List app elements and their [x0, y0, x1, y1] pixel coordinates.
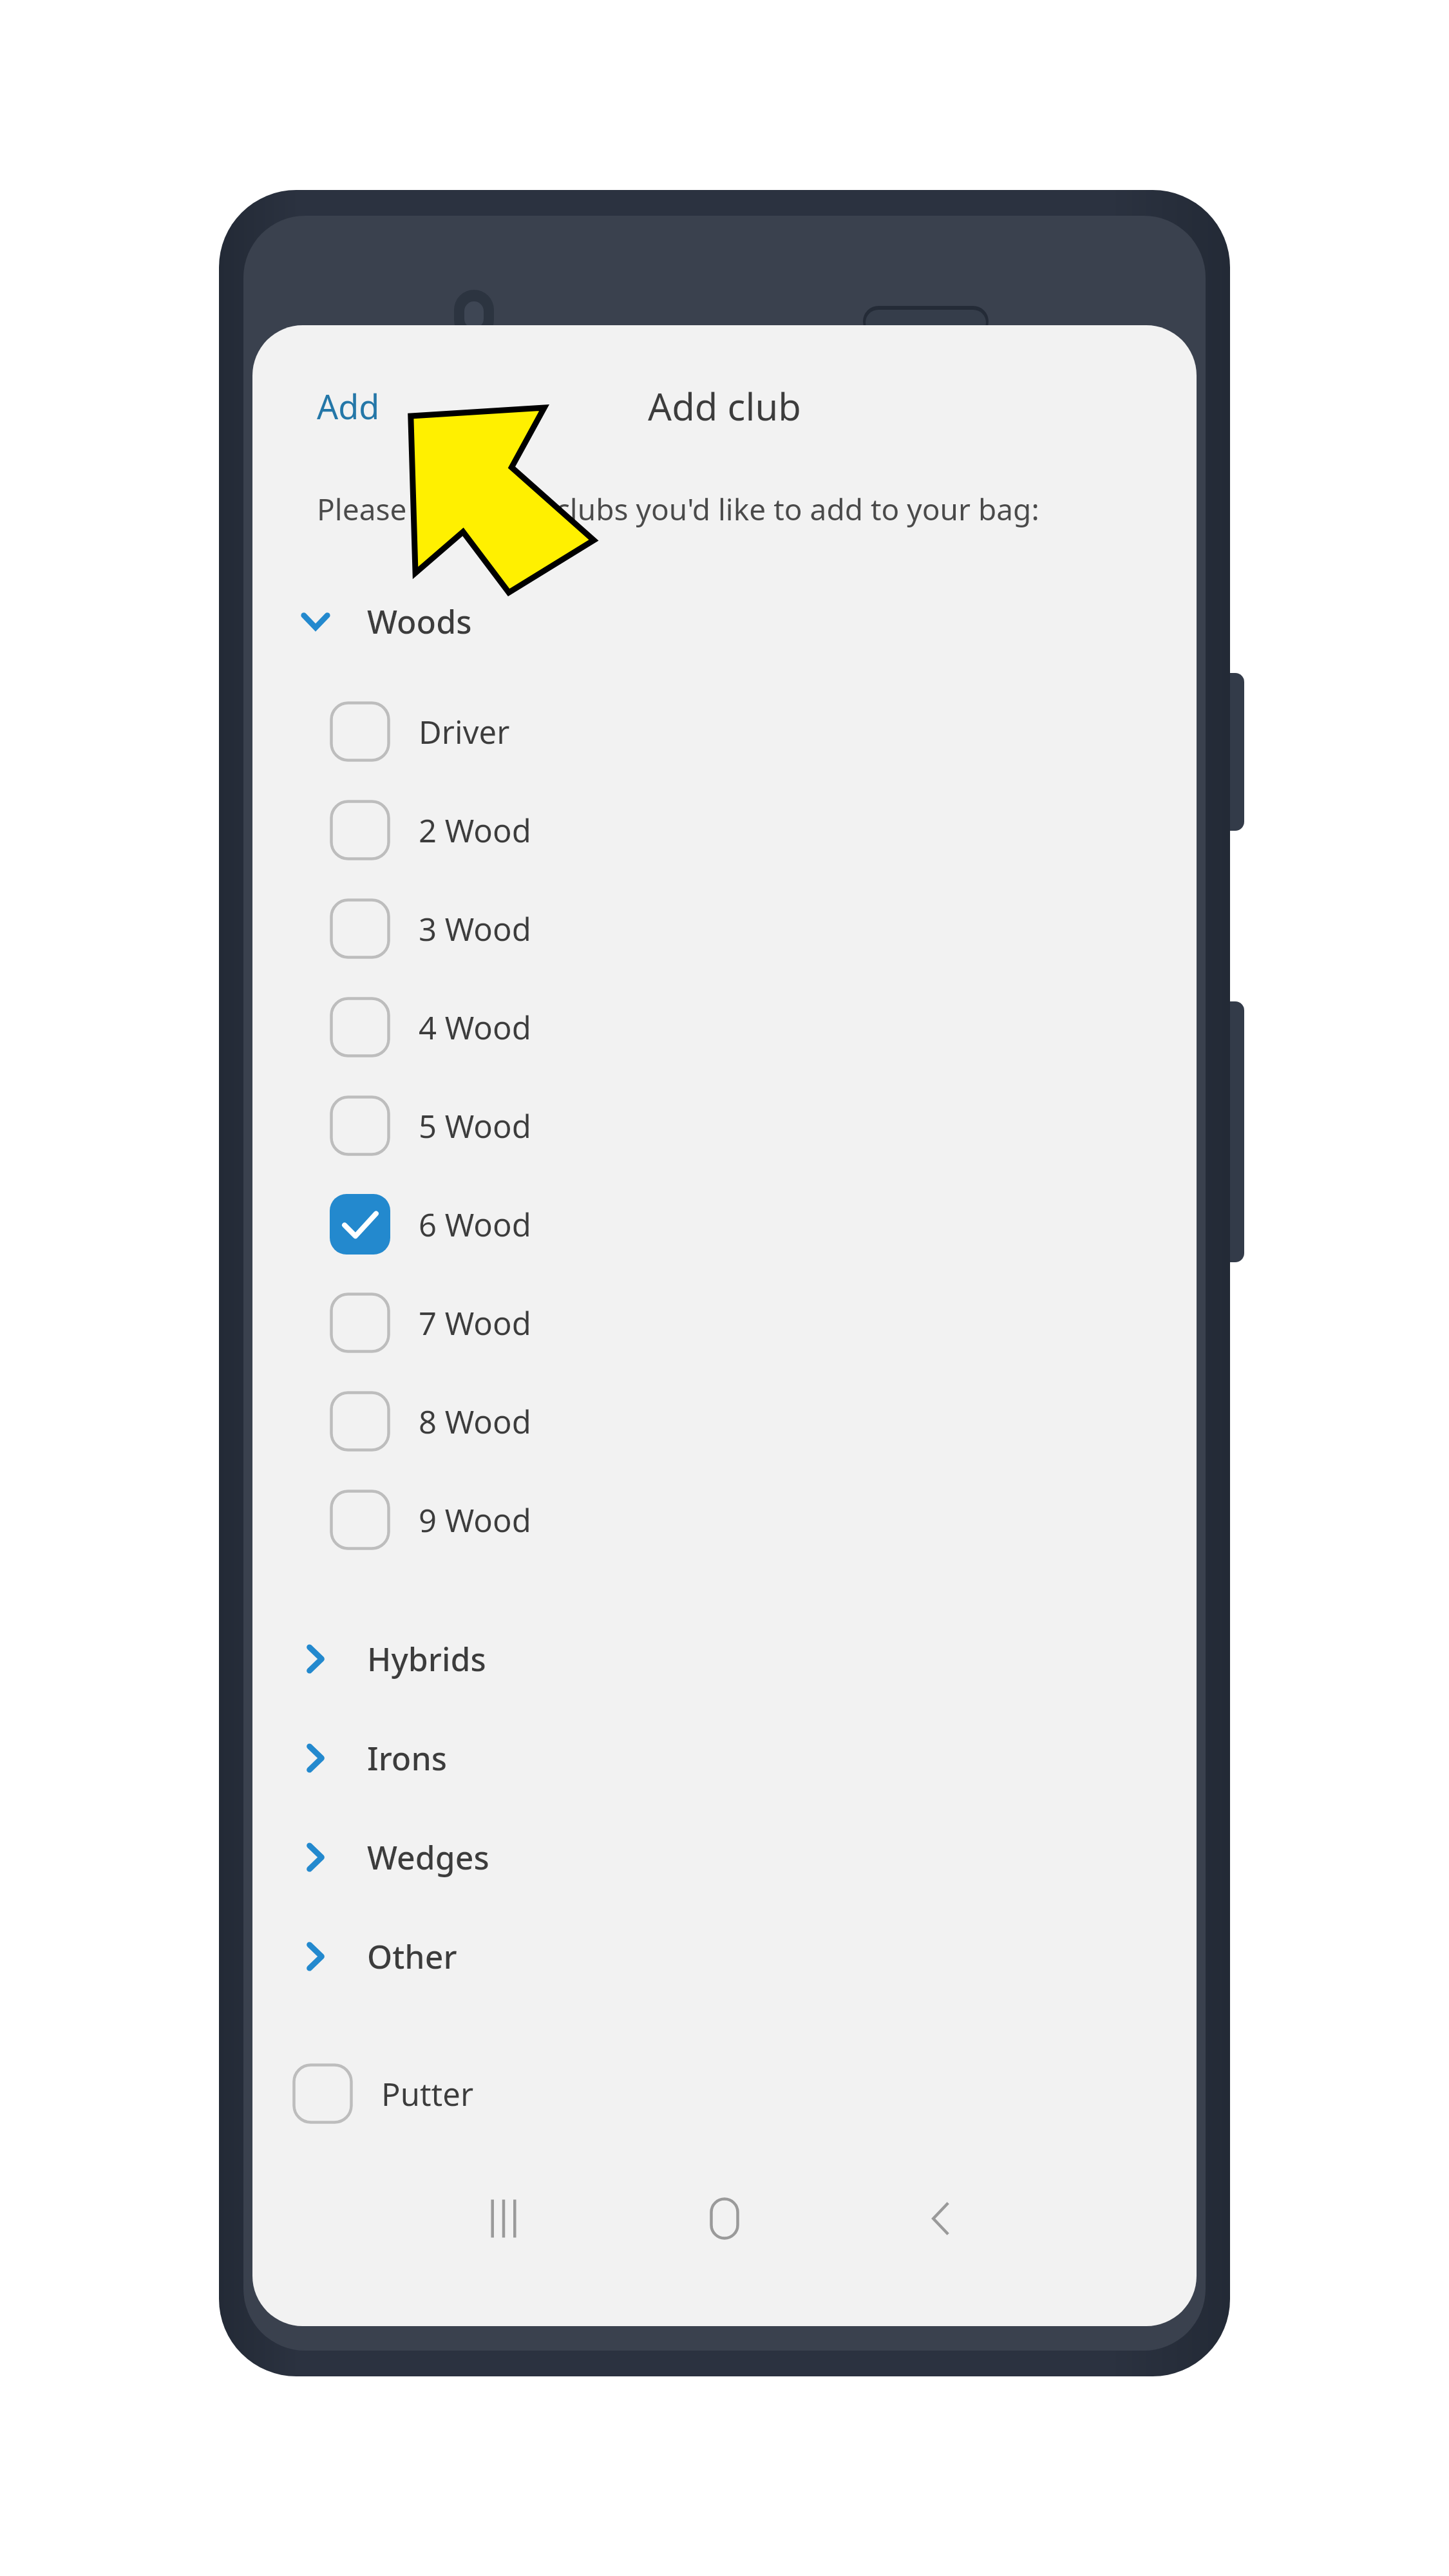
staticText: Please select the clubs you'd like to ad… [317, 489, 1039, 529]
button[interactable]: Home [667, 2161, 782, 2277]
staticText: Hybrids [367, 1637, 486, 1681]
button[interactable]: Hybrids [291, 1617, 1154, 1701]
staticText: 8 Wood [419, 1400, 531, 1443]
button[interactable]: Add [317, 370, 433, 441]
staticText: Putter [381, 2072, 474, 2116]
button[interactable]: 5 Wood [330, 1083, 1128, 1168]
button[interactable]: 6 Wood [330, 1182, 1128, 1267]
button[interactable]: Putter [292, 2051, 1128, 2136]
button[interactable]: Woods [291, 580, 1154, 663]
button[interactable]: Back [884, 2161, 999, 2277]
staticText: 5 Wood [419, 1104, 531, 1148]
staticText: Add [317, 383, 380, 429]
staticText: Driver [419, 710, 510, 753]
button[interactable]: 2 Wood [330, 788, 1128, 873]
button[interactable]: Irons [291, 1716, 1154, 1800]
button[interactable]: 4 Wood [330, 985, 1128, 1070]
staticText: Irons [367, 1736, 448, 1780]
button[interactable]: Wedges [291, 1815, 1154, 1899]
button[interactable]: Other [291, 1915, 1154, 1998]
staticText: 2 Wood [419, 809, 531, 852]
staticText: Wedges [367, 1835, 489, 1879]
staticText: Woods [367, 600, 472, 643]
button[interactable]: 3 Wood [330, 886, 1128, 971]
staticText: 6 Wood [419, 1203, 531, 1246]
staticText: Add club [648, 381, 801, 431]
button[interactable]: 8 Wood [330, 1379, 1128, 1464]
button[interactable]: 9 Wood [330, 1477, 1128, 1562]
button[interactable]: Driver [330, 689, 1128, 774]
button[interactable]: Recent apps [446, 2161, 562, 2277]
staticText: 3 Wood [419, 907, 531, 951]
staticText: 9 Wood [419, 1499, 531, 1542]
staticText: 7 Wood [419, 1302, 531, 1345]
staticText: Other [367, 1935, 457, 1978]
staticText: 4 Wood [419, 1006, 531, 1049]
button[interactable]: 7 Wood [330, 1280, 1128, 1365]
